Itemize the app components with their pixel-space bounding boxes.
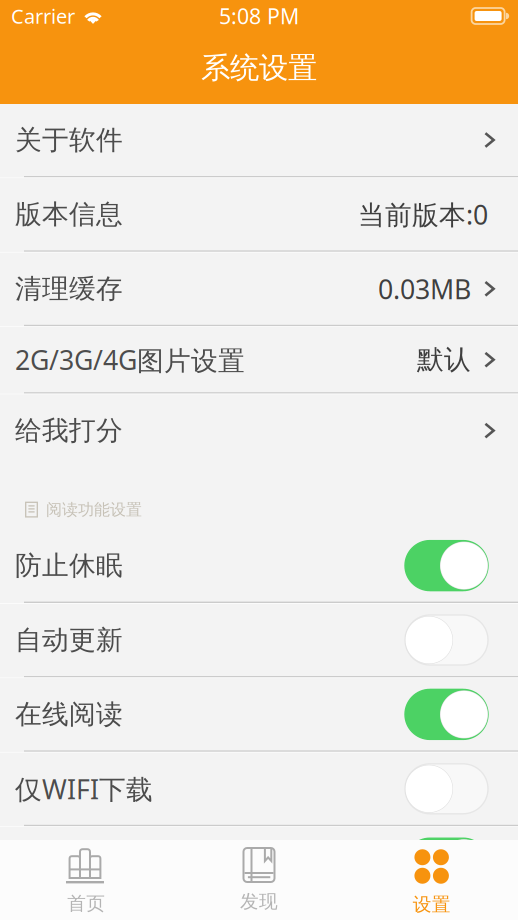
staticText: 仅WIFI下载 bbox=[15, 771, 153, 806]
button[interactable]: 清理缓存 bbox=[0, 253, 518, 325]
staticText: 设置 bbox=[413, 893, 451, 916]
staticText: 阅读功能设置 bbox=[46, 500, 142, 519]
staticText: 给我打分 bbox=[15, 414, 123, 447]
button[interactable]: 版本信息 bbox=[0, 178, 518, 250]
button[interactable]: 发现 bbox=[173, 840, 345, 920]
staticText: 当前版本:0 bbox=[358, 197, 488, 232]
button[interactable]: 2G/3G/4G图片设置 bbox=[0, 327, 518, 392]
staticText: 首页 bbox=[67, 892, 105, 915]
button[interactable]: 关于软件 bbox=[0, 104, 518, 176]
button[interactable]: 给我打分 bbox=[0, 395, 518, 467]
staticText: 关于软件 bbox=[15, 124, 123, 156]
staticText: 发现 bbox=[240, 890, 278, 913]
staticText: 防止休眠 bbox=[15, 549, 123, 582]
staticText: 默认 bbox=[417, 343, 471, 376]
button[interactable]: 设置 bbox=[345, 840, 518, 920]
staticText: 在线阅读 bbox=[15, 698, 123, 731]
button[interactable]: 仅WIFI下载 bbox=[0, 753, 518, 825]
staticText: 系统设置 bbox=[201, 50, 317, 86]
button[interactable]: 首页 bbox=[0, 840, 173, 920]
staticText: 自动更新 bbox=[15, 624, 123, 656]
staticText: 0.03MB bbox=[378, 271, 471, 306]
staticText: 清理缓存 bbox=[15, 272, 123, 305]
staticText: 夜间模式 bbox=[15, 847, 123, 880]
staticText: 2G/3G/4G图片设置 bbox=[15, 342, 245, 377]
staticText: Carrier bbox=[11, 3, 75, 29]
staticText: 版本信息 bbox=[15, 198, 123, 231]
button[interactable]: 自动更新 bbox=[0, 604, 518, 676]
button[interactable]: 防止休眠 bbox=[0, 530, 518, 602]
button[interactable]: 夜间模式 bbox=[0, 827, 518, 899]
button[interactable]: 在线阅读 bbox=[0, 678, 518, 750]
staticText: 5:08 PM bbox=[219, 2, 299, 30]
